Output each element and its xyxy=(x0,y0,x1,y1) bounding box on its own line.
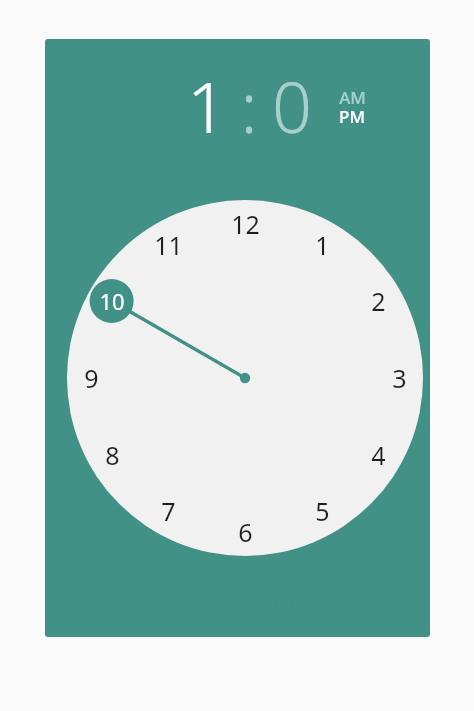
button[interactable]: 12 xyxy=(223,204,267,244)
staticText: 9 xyxy=(84,361,99,395)
button[interactable]: 1 xyxy=(300,225,344,265)
staticText: 6 xyxy=(238,515,253,549)
button[interactable]: PM xyxy=(333,105,371,127)
button[interactable]: 6 xyxy=(223,512,267,552)
staticText: 5 xyxy=(315,494,330,528)
staticText: 3 xyxy=(392,361,407,395)
staticText: 2 xyxy=(371,284,386,318)
button[interactable]: 9 xyxy=(69,358,113,398)
button[interactable]: 3 xyxy=(377,358,421,398)
staticText: 8 xyxy=(105,438,120,472)
button[interactable]: 10 xyxy=(90,281,134,321)
staticText: 7 xyxy=(161,494,176,528)
staticText: 11 xyxy=(154,228,183,262)
staticText: : xyxy=(240,58,258,134)
staticText: PM xyxy=(339,105,365,127)
button[interactable]: 8 xyxy=(90,435,134,475)
button[interactable]: 00 xyxy=(259,58,325,134)
staticText: 12 xyxy=(231,207,260,241)
button[interactable]: 11 xyxy=(146,225,190,265)
button[interactable]: 5 xyxy=(300,491,344,531)
staticText: 00 xyxy=(259,58,325,134)
button[interactable]: 4 xyxy=(356,435,400,475)
staticText: 10 xyxy=(99,286,125,316)
button[interactable]: 7 xyxy=(146,491,190,531)
button[interactable]: AM xyxy=(333,86,371,108)
staticText: 10 xyxy=(176,58,238,134)
button[interactable]: 2 xyxy=(356,281,400,321)
button[interactable]: 10 xyxy=(176,58,238,134)
staticText: AM xyxy=(339,86,366,108)
staticText: 4 xyxy=(371,438,386,472)
staticText: 1 xyxy=(315,228,330,262)
